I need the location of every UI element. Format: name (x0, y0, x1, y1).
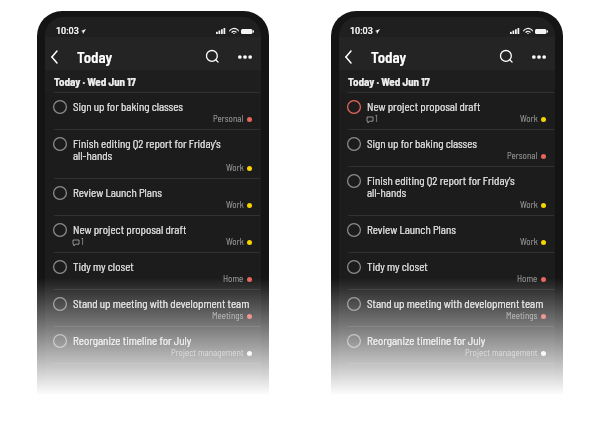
button[interactable]: New project proposal draft (339, 93, 555, 130)
staticText: 1 (81, 236, 84, 247)
staticText: Work (226, 236, 244, 247)
button[interactable]: Stand up meeting with development team (339, 290, 555, 327)
staticText: 1 (375, 113, 378, 124)
staticText: Today (371, 48, 407, 66)
button[interactable]: Back (45, 48, 62, 65)
staticText: Review Launch Plans (367, 223, 456, 236)
button[interactable]: Finish editing Q2 report for Friday's al… (45, 130, 261, 179)
button[interactable]: Tidy my closet (339, 253, 555, 290)
staticText: Project management (171, 347, 244, 358)
staticText: Home (517, 273, 538, 284)
staticText: Tidy my closet (367, 260, 428, 273)
staticText: Personal (213, 113, 244, 124)
staticText: Personal (507, 150, 538, 161)
staticText: 10:03 (350, 26, 373, 37)
button[interactable]: Review Launch Plans (45, 179, 261, 216)
button[interactable]: Back (339, 48, 356, 65)
button[interactable]: Sign up for baking classes (339, 130, 555, 167)
button[interactable]: Reorganize timeline for July (339, 327, 555, 364)
staticText: Sign up for baking classes (367, 137, 478, 150)
button[interactable]: Tidy my closet (45, 253, 261, 290)
button[interactable]: Sign up for baking classes (45, 93, 261, 130)
staticText: Tidy my closet (73, 260, 134, 273)
staticText: Review Launch Plans (73, 186, 162, 199)
staticText: Today · Wed Jun 17 (54, 75, 136, 88)
staticText: Work (520, 199, 538, 210)
button[interactable]: Search (202, 46, 222, 66)
staticText: Today (77, 48, 113, 66)
staticText: Reorganize timeline for July (73, 334, 192, 347)
button[interactable]: More options (235, 47, 255, 67)
staticText: Stand up meeting with development team (367, 297, 544, 310)
staticText: Home (223, 273, 244, 284)
staticText: Today · Wed Jun 17 (348, 75, 430, 88)
staticText: Stand up meeting with development team (73, 297, 250, 310)
staticText: Work (226, 162, 244, 173)
button[interactable]: Finish editing Q2 report for Friday's al… (339, 167, 555, 216)
button[interactable]: Stand up meeting with development team (45, 290, 261, 327)
staticText: Meetings (212, 310, 244, 321)
button[interactable]: Reorganize timeline for July (45, 327, 261, 364)
staticText: New project proposal draft (367, 100, 481, 113)
staticText: Meetings (506, 310, 538, 321)
staticText: Finish editing Q2 report for Friday's al… (367, 174, 515, 199)
staticText: Project management (465, 347, 538, 358)
staticText: 10:03 (56, 26, 79, 37)
button[interactable]: New project proposal draft (45, 216, 261, 253)
staticText: Reorganize timeline for July (367, 334, 486, 347)
staticText: Work (520, 113, 538, 124)
staticText: New project proposal draft (73, 223, 187, 236)
staticText: Finish editing Q2 report for Friday's al… (73, 137, 221, 162)
staticText: Sign up for baking classes (73, 100, 184, 113)
button[interactable]: More options (529, 47, 549, 67)
staticText: Work (520, 236, 538, 247)
button[interactable]: Review Launch Plans (339, 216, 555, 253)
button[interactable]: Search (496, 46, 516, 66)
staticText: Work (226, 199, 244, 210)
